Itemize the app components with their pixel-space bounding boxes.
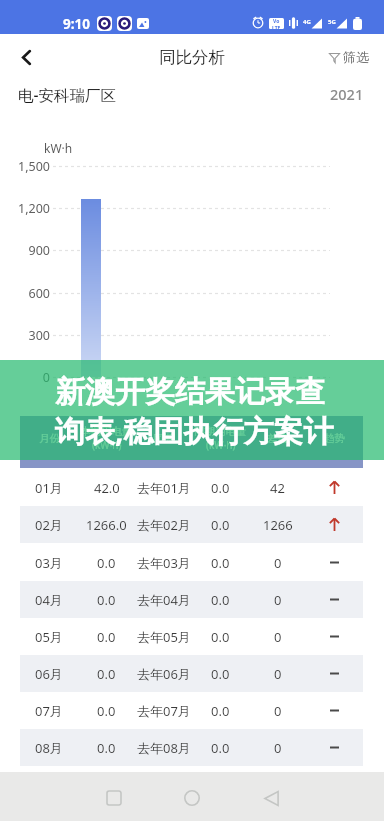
staticText: 去年07月 <box>137 702 191 720</box>
staticText: 差值 <box>267 432 288 445</box>
button[interactable]: Recents <box>97 781 131 815</box>
staticText: 07月 <box>35 702 63 720</box>
staticText: 05月 <box>35 628 63 646</box>
staticText: 0.0 <box>211 516 230 534</box>
staticText: 1266.0 <box>86 516 127 534</box>
staticText: 0.0 <box>211 665 230 683</box>
button[interactable]: 07月 <box>20 692 363 729</box>
button[interactable]: Home <box>175 781 209 815</box>
staticText: 0 <box>274 591 282 609</box>
staticText: 0.0 <box>211 628 230 646</box>
staticText: 新澳开奖结果记录查 询表,稳固执行方案计 <box>55 373 334 451</box>
staticText: 0 <box>274 554 282 572</box>
staticText: 0.0 <box>97 665 116 683</box>
staticText: 同期 <box>153 432 174 445</box>
staticText: 0 <box>274 702 282 720</box>
staticText: 筛选 <box>343 49 369 65</box>
staticText: 趋势 <box>324 432 345 445</box>
button[interactable]: 02月 <box>20 506 363 543</box>
staticText: 同期用电量 <box>194 425 247 438</box>
staticText: 0 <box>0 369 50 386</box>
staticText: 0.0 <box>211 554 230 572</box>
button[interactable]: 06月 <box>20 655 363 692</box>
staticText: 1,200 <box>0 200 50 217</box>
staticText: kW·h <box>44 140 73 156</box>
button[interactable]: Back <box>8 39 44 75</box>
staticText: 0.0 <box>97 628 116 646</box>
staticText: 去年03月 <box>137 554 191 572</box>
staticText: 9:10 <box>63 15 90 31</box>
staticText: 300 <box>0 327 50 344</box>
staticText: 5G <box>328 18 336 26</box>
staticText: 1266 <box>263 516 293 534</box>
staticText: 月份 <box>39 432 60 445</box>
staticText: 04月 <box>35 591 63 609</box>
button[interactable]: Back <box>254 781 288 815</box>
staticText: 42.0 <box>94 479 120 497</box>
staticText: 600 <box>0 285 50 302</box>
staticText: (kW·h) <box>206 438 236 452</box>
staticText: 0.0 <box>211 739 230 757</box>
button[interactable]: 03月 <box>20 544 363 581</box>
staticText: 本期用电量 <box>80 425 133 438</box>
staticText: 03月 <box>35 554 63 572</box>
staticText: Vo <box>273 18 280 25</box>
staticText: 0 <box>274 665 282 683</box>
staticText: 42 <box>270 479 285 497</box>
button[interactable]: 01月 <box>20 469 363 506</box>
staticText: LTE <box>272 25 281 29</box>
staticText: 去年01月 <box>137 479 191 497</box>
staticText: 06月 <box>35 665 63 683</box>
staticText: 01月 <box>35 479 63 497</box>
staticText: 08月 <box>35 739 63 757</box>
staticText: 0 <box>274 628 282 646</box>
staticText: 0 <box>274 739 282 757</box>
staticText: 电-安科瑞厂区 <box>18 84 116 105</box>
button[interactable]: 08月 <box>20 729 363 766</box>
staticText: 去年05月 <box>137 628 191 646</box>
button[interactable]: 筛选 <box>329 49 369 65</box>
staticText: 去年06月 <box>137 665 191 683</box>
staticText: 1,500 <box>0 158 50 175</box>
staticText: 去年04月 <box>137 591 191 609</box>
button[interactable]: 05月 <box>20 618 363 655</box>
staticText: 0.0 <box>97 591 116 609</box>
staticText: 2021 <box>330 84 364 104</box>
staticText: 0.0 <box>97 739 116 757</box>
staticText: 4G <box>303 18 311 26</box>
staticText: 0.0 <box>97 702 116 720</box>
staticText: 02月 <box>35 516 63 534</box>
staticText: 0.0 <box>97 554 116 572</box>
staticText: 同比分析 <box>159 47 225 68</box>
staticText: 0.0 <box>211 591 230 609</box>
staticText: (kW·h) <box>92 438 122 452</box>
staticText: 0.0 <box>211 479 230 497</box>
staticText: 去年02月 <box>137 516 191 534</box>
staticText: 0.0 <box>211 702 230 720</box>
staticText: 900 <box>0 242 50 259</box>
button[interactable]: 04月 <box>20 581 363 618</box>
staticText: 去年08月 <box>137 739 191 757</box>
